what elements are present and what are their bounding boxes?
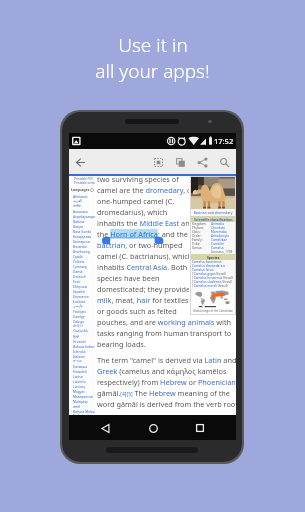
staticText: Български	[73, 239, 90, 243]
staticText: milk, meat, hair for textiles	[97, 295, 189, 305]
staticText: Asturianu	[73, 209, 89, 213]
staticText: Dansk	[73, 269, 83, 273]
staticText: Animalia	[211, 222, 235, 226]
staticText: Camelus dromedarius	[192, 264, 235, 268]
button[interactable]: Back	[69, 151, 91, 173]
staticText: Kingdom:	[192, 222, 211, 226]
staticText: Chordata	[211, 226, 235, 230]
staticText: Македонски	[73, 394, 93, 398]
button[interactable]: Home	[142, 417, 164, 439]
staticText: Camelini	[211, 242, 235, 246]
staticText: Galego	[73, 319, 84, 323]
staticText: Latviešu	[73, 379, 86, 383]
staticText: Bahasa Indonesia	[73, 344, 95, 348]
staticText: Phylum:	[192, 226, 211, 230]
staticText: Scientific classification	[194, 217, 233, 222]
staticText: Français	[73, 309, 86, 313]
staticText: †Camelus hesternus (fossil)	[192, 276, 235, 280]
staticText: Euskara	[73, 299, 86, 303]
staticText: Family:	[192, 238, 211, 242]
button[interactable]: Select text	[147, 151, 169, 173]
staticText: Camelus	[211, 246, 235, 250]
staticText: Nederlands	[73, 413, 91, 415]
staticText: Tribe:	[192, 242, 211, 246]
staticText: Printable PDF	[74, 177, 94, 181]
button[interactable]: Share	[191, 151, 213, 173]
staticText: respectively) from Hebrew or Phoenician	[97, 377, 236, 387]
staticText: Bosanski	[73, 244, 87, 248]
staticText: camel (C. bactrianus), which	[97, 251, 189, 261]
staticText: Қазақша	[73, 364, 88, 368]
staticText: tasks ranging from human transport to	[97, 328, 232, 338]
staticText: Use it in	[118, 32, 188, 58]
staticText: Printable version	[74, 181, 95, 185]
button[interactable]: Search	[213, 151, 235, 173]
staticText: Ελληνικά	[73, 284, 87, 288]
staticText: Brezhoneg	[73, 249, 90, 253]
button[interactable]: Recents	[189, 417, 211, 439]
staticText: Banjar	[73, 224, 84, 228]
button[interactable]: Back	[94, 417, 116, 439]
staticText: Bahasa Melayu	[73, 409, 95, 413]
staticText: camel are the dromedary, or	[97, 185, 189, 195]
staticText: Eesti	[73, 279, 81, 283]
staticText: Íslenska	[73, 349, 86, 353]
staticText: bactrian, or two-humped	[97, 240, 183, 250]
staticText: domesticated; they provide	[97, 284, 189, 294]
staticText: Latina	[73, 374, 83, 378]
staticText: or goods such as felted	[97, 306, 177, 316]
staticText: gāmāl.[4][5] The Hebrew meaning of the	[97, 388, 230, 398]
staticText: Беларуская	[73, 234, 92, 238]
staticText: Català	[73, 254, 83, 258]
staticText: فارسی	[73, 304, 83, 308]
staticText: Class:	[192, 230, 211, 234]
staticText: Malagasy	[73, 399, 88, 403]
staticText: Species	[207, 255, 220, 260]
staticText: inhabits the Middle East and	[97, 218, 189, 228]
staticText: Čeština	[73, 259, 85, 263]
staticText: Basa Sunda	[73, 229, 92, 233]
staticText: Азәрбајҹанда	[73, 214, 95, 218]
staticText: the Horn of Africa; and the	[97, 229, 188, 239]
staticText: †Camelus gigas (fossil)	[192, 272, 235, 276]
staticText: Hrvatski	[73, 339, 86, 343]
staticText: †Camelus moreli (fossil)	[192, 284, 235, 288]
staticText: Afrikaans	[73, 194, 88, 198]
staticText: मराठी	[73, 404, 80, 408]
staticText: Español	[73, 289, 86, 293]
staticText: Lietuvių	[73, 384, 86, 388]
staticText: Cymraeg	[73, 264, 87, 268]
staticText: Bactrian and dromedary	[191, 210, 235, 215]
staticText: The term "camel" is derived via Latin an…	[97, 355, 236, 365]
staticText: Camelidae	[211, 238, 235, 242]
staticText: pouches, and are working animals with	[97, 317, 232, 327]
staticText: Order:	[192, 234, 211, 238]
staticText: †Camelus sivalensis (fossil)	[192, 280, 235, 284]
staticText: हिन्दी	[73, 334, 80, 338]
staticText: עברית	[73, 359, 82, 363]
staticText: العربية	[73, 199, 83, 203]
staticText: 한국어	[73, 324, 83, 328]
staticText: Camelus bactrianus	[192, 260, 235, 264]
staticText: species have been	[97, 273, 160, 283]
staticText: Greek (camelus and κάμηλος kamēlos	[97, 366, 227, 376]
staticText: Global range of the Camelidae	[193, 309, 233, 313]
staticText: Linnaeus, 1758	[211, 250, 235, 254]
button[interactable]: Copy	[169, 151, 191, 173]
staticText: bearing loads.	[97, 339, 146, 349]
staticText: Languages	[71, 187, 90, 192]
staticText: Deutsch	[73, 274, 86, 278]
staticText: Gaeilge	[73, 314, 85, 318]
staticText: word gāmāl is derived from the verb root	[97, 399, 236, 409]
staticText: Kiswahili	[73, 369, 87, 373]
staticText: Italiano	[73, 354, 85, 358]
staticText: all your apps!	[95, 58, 210, 84]
staticText: one-humped camel (C.	[97, 196, 175, 206]
staticText: Esperanto	[73, 294, 89, 298]
staticText: dromedarius), which	[97, 207, 168, 217]
staticText: Mammalia	[211, 230, 235, 234]
staticText: Artiodactyla	[211, 234, 235, 238]
staticText: Camelus ferus	[192, 268, 235, 272]
staticText: Genus:	[192, 246, 211, 250]
